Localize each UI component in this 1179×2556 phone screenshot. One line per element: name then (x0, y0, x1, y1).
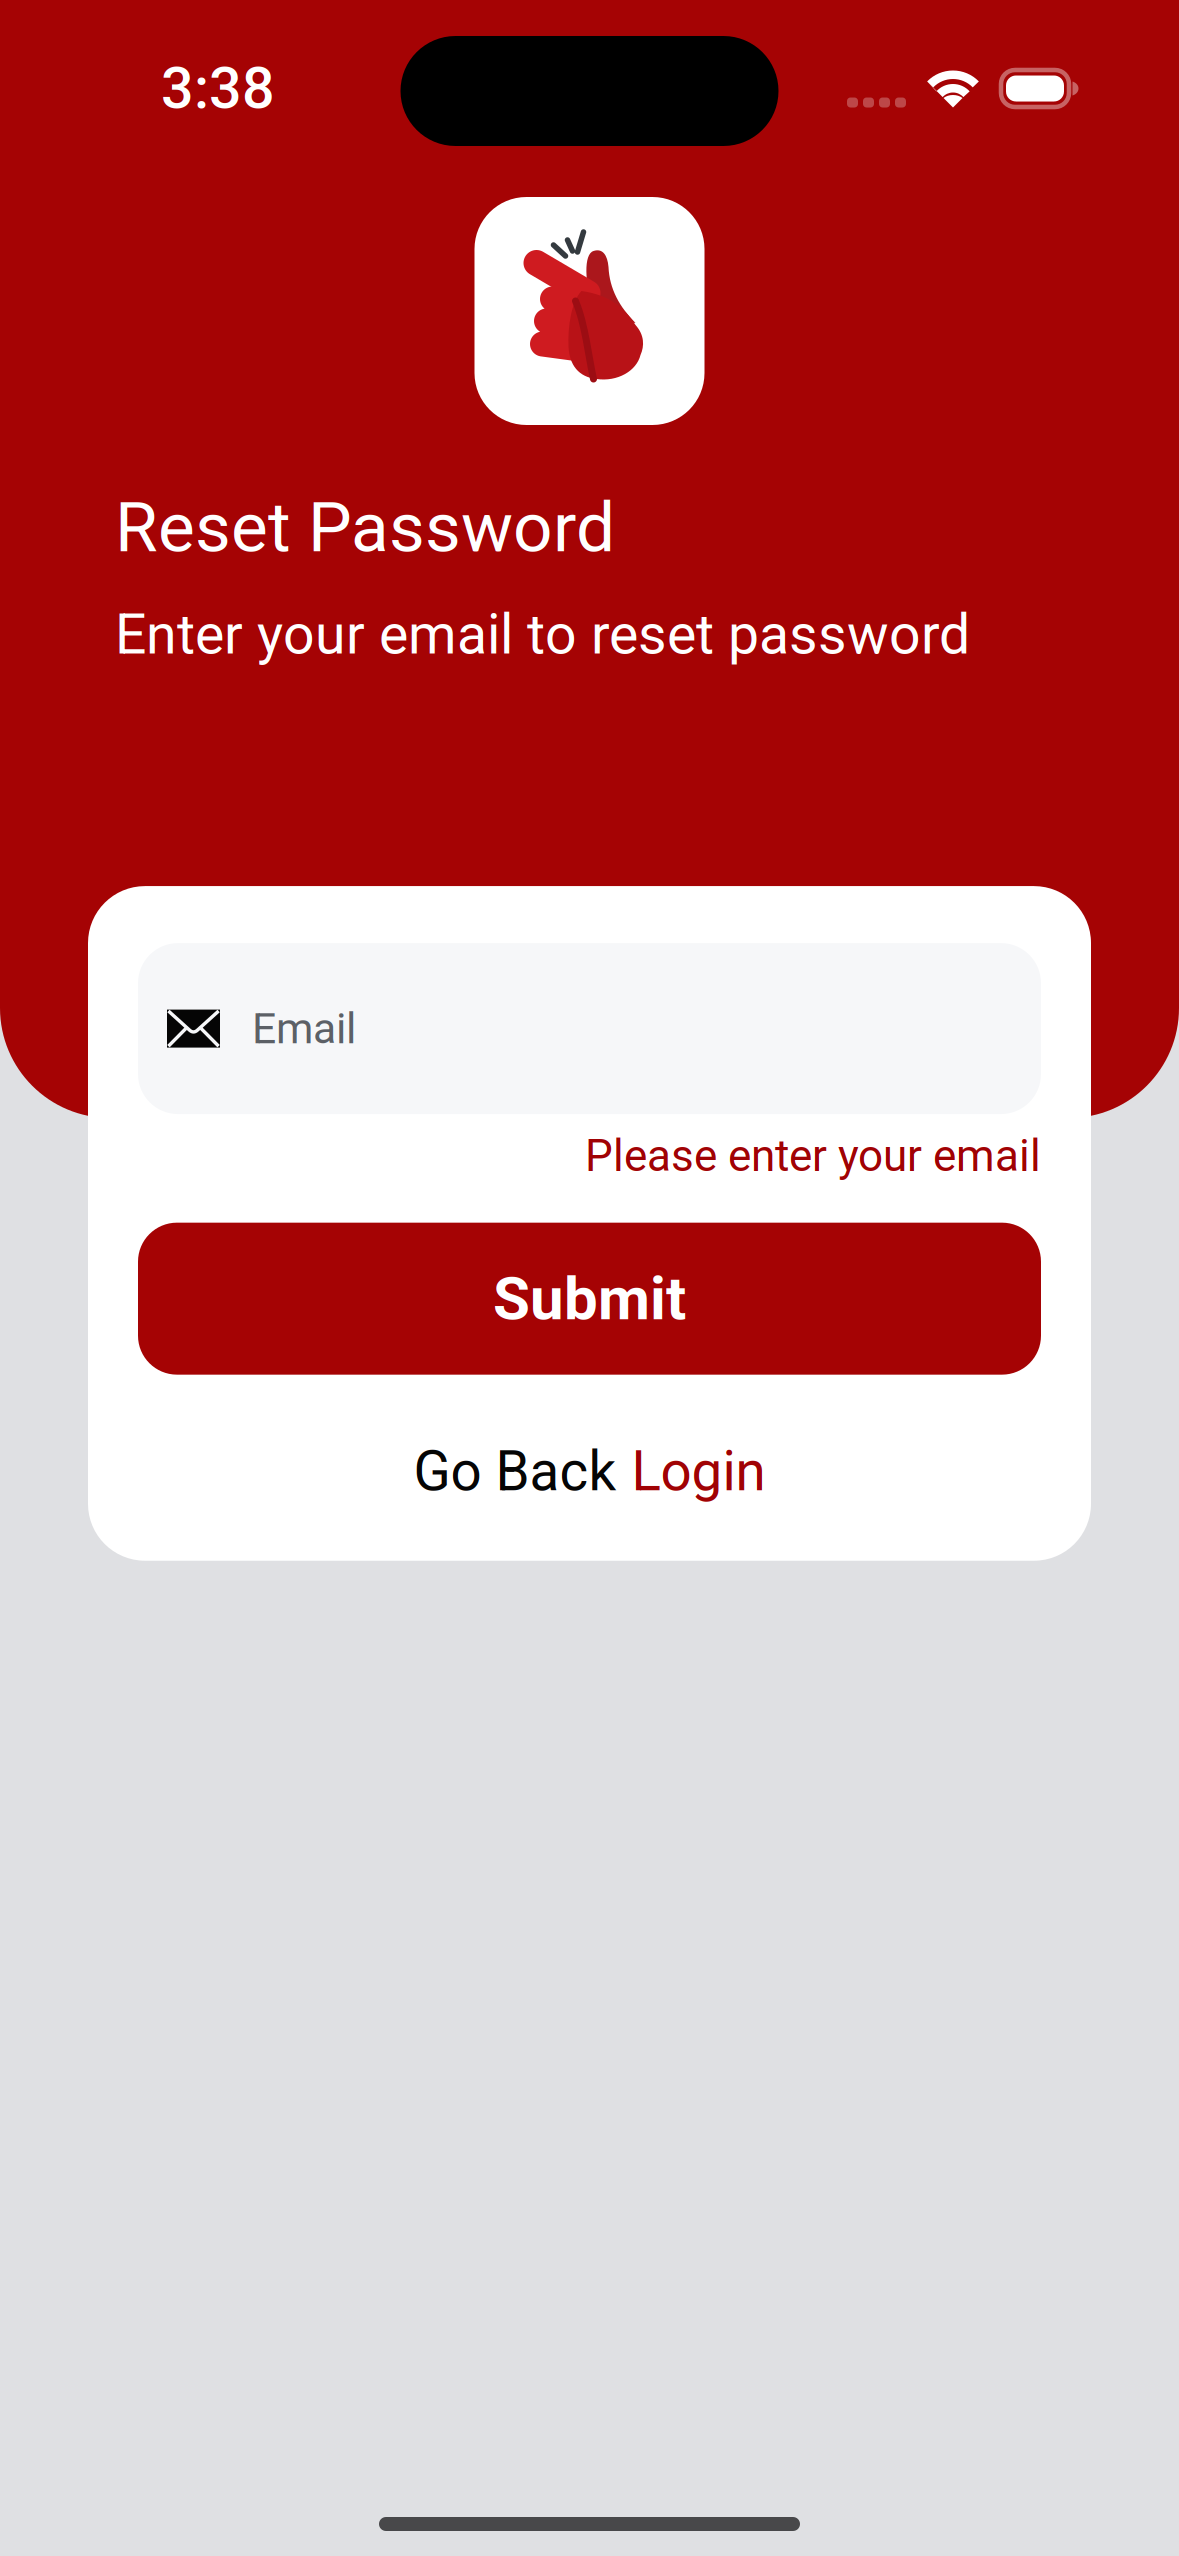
staticText: Please enter your email (585, 1130, 1041, 1182)
staticText: Login (631, 1440, 765, 1504)
staticText: 3:38 (161, 55, 275, 122)
button[interactable]: Login (631, 1440, 765, 1504)
staticText: Enter your email to reset password (115, 602, 970, 667)
staticText: Submit (493, 1263, 686, 1334)
staticText: Go Back (413, 1440, 616, 1504)
button[interactable]: Go Back (413, 1440, 616, 1504)
staticText: Email (252, 1004, 356, 1054)
button[interactable]: Email (138, 943, 1041, 1114)
staticText: Reset Password (115, 487, 615, 568)
button[interactable]: Submit (138, 1223, 1041, 1375)
